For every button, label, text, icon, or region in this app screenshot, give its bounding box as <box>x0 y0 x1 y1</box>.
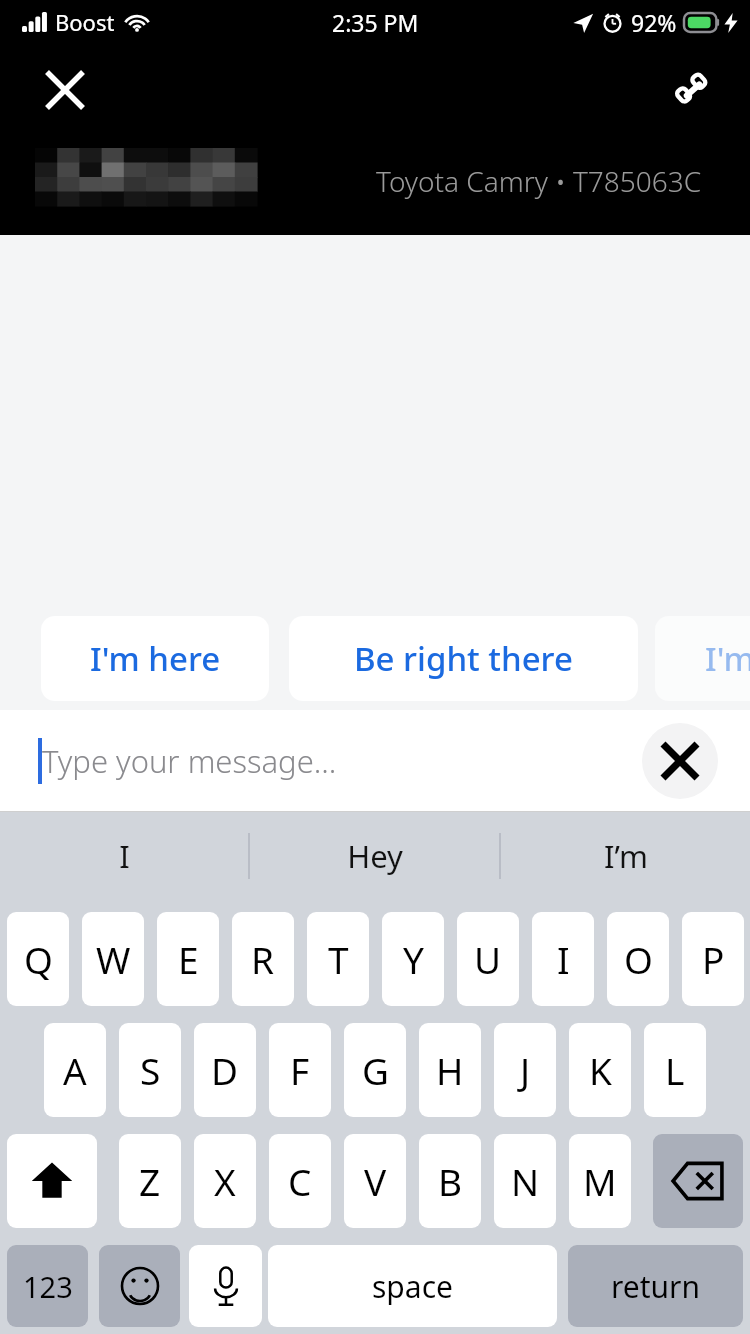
button[interactable]: Q <box>7 912 69 1006</box>
button[interactable]: Z <box>119 1134 181 1228</box>
button[interactable]: Shift <box>7 1134 97 1228</box>
staticText: B <box>438 1156 463 1206</box>
staticText: 2:35 PM <box>332 7 419 38</box>
button[interactable]: I’m <box>501 812 750 900</box>
staticText: 92% <box>631 7 677 38</box>
staticText: J <box>520 1045 531 1095</box>
staticText: Boost <box>55 7 115 37</box>
staticText: D <box>211 1045 239 1095</box>
staticText: Z <box>139 1156 161 1206</box>
button[interactable]: H <box>419 1023 481 1117</box>
button[interactable]: V <box>344 1134 406 1228</box>
staticText: I’m <box>604 835 648 877</box>
button[interactable]: X <box>194 1134 256 1228</box>
button[interactable]: Dictate <box>189 1245 262 1327</box>
button[interactable]: G <box>344 1023 406 1117</box>
staticText: T <box>328 934 349 984</box>
staticText: F <box>290 1045 310 1095</box>
button[interactable]: M <box>569 1134 631 1228</box>
staticText: Type your message... <box>42 740 337 782</box>
button[interactable]: W <box>82 912 144 1006</box>
staticText: Be right there <box>354 636 573 681</box>
button[interactable]: Be right there <box>289 616 638 701</box>
button[interactable]: S <box>119 1023 181 1117</box>
staticText: I'm on <box>705 636 750 681</box>
button[interactable]: I <box>532 912 594 1006</box>
staticText: M <box>583 1156 617 1206</box>
button[interactable]: Space <box>268 1245 557 1327</box>
staticText: N <box>511 1156 540 1206</box>
staticText: 123 <box>23 1267 73 1306</box>
button[interactable]: N <box>494 1134 556 1228</box>
button[interactable]: Close <box>30 55 100 125</box>
button[interactable]: Clear message <box>642 723 718 799</box>
staticText: E <box>178 934 199 984</box>
button[interactable]: K <box>569 1023 631 1117</box>
button[interactable]: R <box>232 912 294 1006</box>
staticText: Hey <box>347 835 403 877</box>
button[interactable]: U <box>457 912 519 1006</box>
staticText: I <box>119 835 130 877</box>
staticText: C <box>288 1156 312 1206</box>
button[interactable]: I'm on <box>655 616 750 701</box>
staticText: R <box>251 934 275 984</box>
button[interactable]: J <box>494 1023 556 1117</box>
staticText: G <box>362 1045 389 1095</box>
staticText: H <box>436 1045 464 1095</box>
staticText: Toyota Camry • T785063C <box>376 162 702 200</box>
button[interactable]: Return <box>568 1245 743 1327</box>
staticText: U <box>474 934 502 984</box>
button[interactable]: E <box>157 912 219 1006</box>
staticText: Q <box>24 934 53 984</box>
button[interactable]: Hey <box>250 812 499 900</box>
staticText: O <box>624 934 653 984</box>
staticText: Y <box>403 934 424 984</box>
staticText: return <box>611 1266 701 1307</box>
staticText: S <box>140 1045 161 1095</box>
button[interactable]: O <box>607 912 669 1006</box>
button[interactable]: Y <box>382 912 444 1006</box>
staticText: P <box>702 934 725 984</box>
staticText: L <box>665 1045 685 1095</box>
staticText: I <box>557 934 570 984</box>
button[interactable]: T <box>307 912 369 1006</box>
button[interactable]: C <box>269 1134 331 1228</box>
button[interactable]: A <box>44 1023 106 1117</box>
button[interactable]: Emoji <box>99 1245 180 1327</box>
staticText: X <box>214 1156 236 1206</box>
button[interactable]: F <box>269 1023 331 1117</box>
button[interactable]: L <box>644 1023 706 1117</box>
button[interactable]: P <box>682 912 744 1006</box>
button[interactable]: Backspace <box>653 1134 743 1228</box>
button[interactable]: Numbers <box>7 1245 88 1327</box>
staticText: space <box>372 1266 453 1307</box>
button[interactable]: D <box>194 1023 256 1117</box>
button[interactable]: B <box>419 1134 481 1228</box>
staticText: I'm here <box>90 636 221 681</box>
staticText: A <box>63 1045 87 1095</box>
staticText: V <box>364 1156 387 1206</box>
button[interactable]: I <box>0 812 248 900</box>
button[interactable]: Call <box>658 55 728 125</box>
button[interactable]: I'm here <box>41 616 269 701</box>
staticText: W <box>96 934 131 984</box>
staticText: K <box>589 1045 612 1095</box>
